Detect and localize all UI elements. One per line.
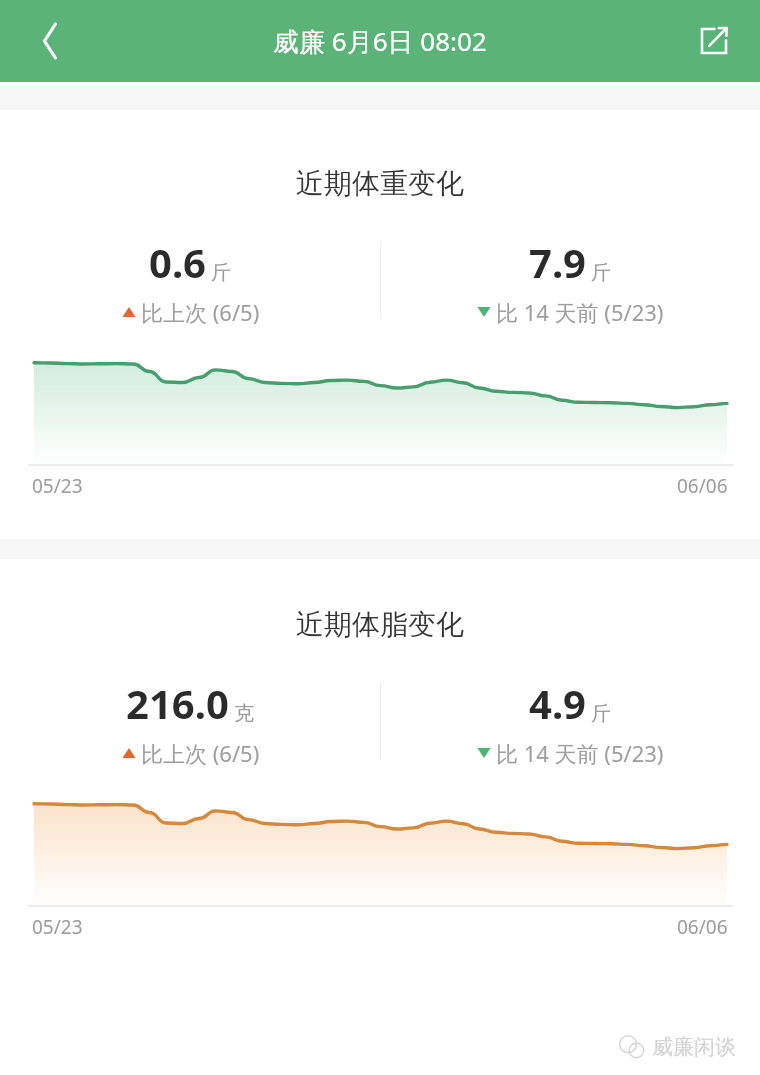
staticText: 威廉 6月6日 08:02	[273, 23, 487, 59]
staticText: 05/23	[32, 473, 83, 499]
staticText: 威廉闲谈	[652, 1034, 736, 1060]
staticText: 比 14 天前 (5/23)	[496, 297, 664, 327]
button[interactable]: 7.9	[380, 235, 760, 327]
staticText: 近期体脂变化	[0, 607, 760, 642]
staticText: 06/06	[677, 914, 728, 940]
staticText: 比 14 天前 (5/23)	[496, 738, 664, 768]
staticText: 斤	[591, 701, 611, 726]
staticText: 7.9	[529, 235, 586, 289]
staticText: 4.9	[529, 676, 586, 730]
button[interactable]: 4.9	[380, 676, 760, 768]
staticText: 0.6	[149, 235, 206, 289]
staticText: 05/23	[32, 914, 83, 940]
staticText: 比上次 (6/5)	[141, 297, 260, 327]
staticText: 比上次 (6/5)	[141, 738, 260, 768]
button[interactable]: Share	[688, 15, 740, 67]
button[interactable]: Back	[22, 13, 78, 69]
staticText: 克	[234, 701, 254, 726]
staticText: 06/06	[677, 473, 728, 499]
staticText: 216.0	[126, 676, 229, 730]
button[interactable]: 216.0	[0, 676, 380, 768]
button[interactable]: 0.6	[0, 235, 380, 327]
staticText: 斤	[211, 260, 231, 285]
staticText: 近期体重变化	[0, 166, 760, 201]
staticText: 斤	[591, 260, 611, 285]
